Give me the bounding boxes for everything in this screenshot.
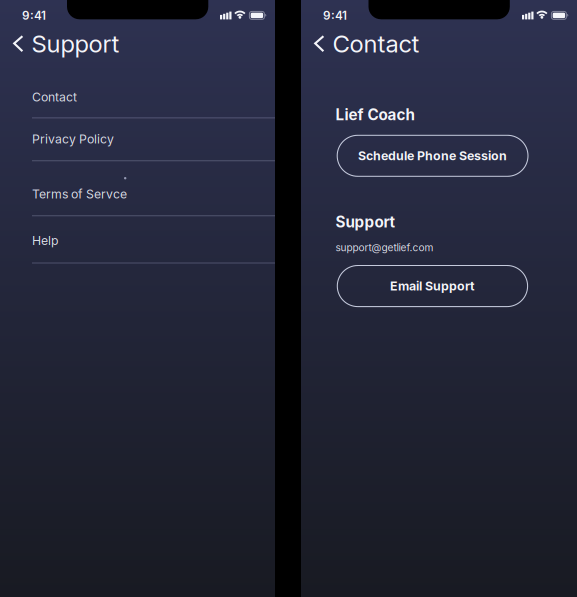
staticText: Contact	[32, 89, 77, 104]
staticText: Help	[32, 233, 59, 248]
staticText: Support	[335, 213, 395, 231]
staticText: 9:41	[22, 8, 46, 22]
button[interactable]: Schedule Phone Session	[337, 135, 528, 176]
button[interactable]: Back	[4, 28, 32, 60]
staticText: Contact	[333, 29, 420, 58]
staticText: Email Support	[390, 278, 475, 293]
staticText: Lief Coach	[335, 105, 414, 124]
staticText: support@getlief.com	[335, 241, 433, 254]
button[interactable]: Contact	[0, 74, 275, 118]
button[interactable]: Terms of Servce	[0, 161, 275, 216]
button[interactable]: Email Support	[337, 265, 528, 307]
staticText: Privacy Policy	[32, 132, 114, 146]
button[interactable]: Back	[305, 28, 333, 60]
button[interactable]: Privacy Policy	[0, 118, 275, 161]
button[interactable]: Help	[0, 216, 275, 263]
staticText: Support	[32, 29, 120, 58]
staticText: Schedule Phone Session	[358, 148, 507, 163]
staticText: Terms of Servce	[32, 187, 127, 201]
staticText: 9:41	[323, 8, 347, 22]
